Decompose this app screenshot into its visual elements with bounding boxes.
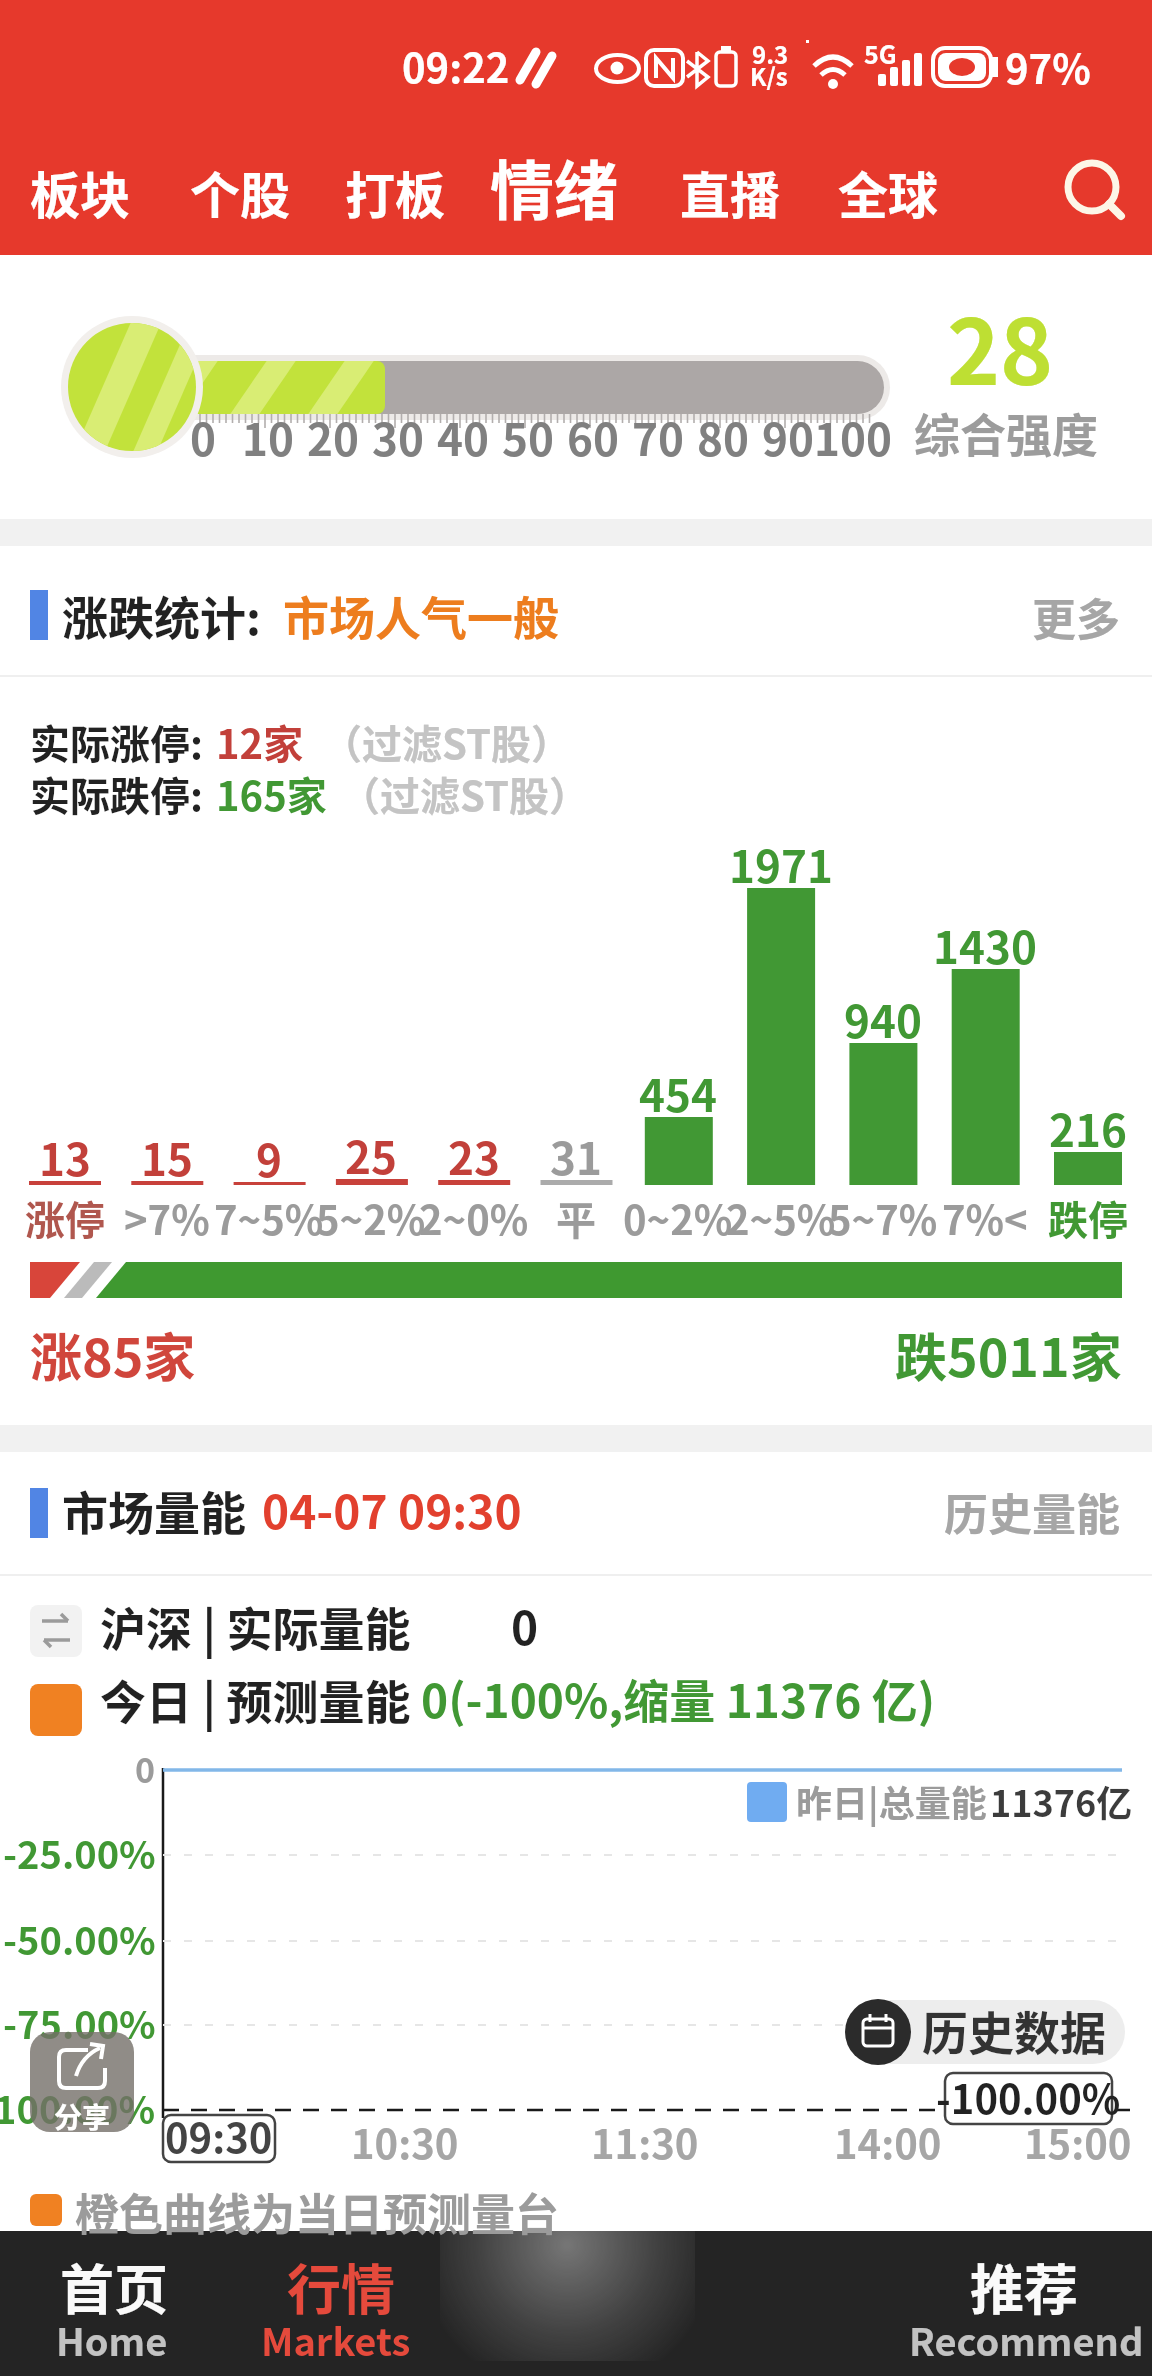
staticText: 涨停 [25, 1189, 105, 1247]
staticText: 昨日|总量能 [796, 1775, 987, 1827]
staticText: 0(-100%,缩量 11376 亿) [421, 1665, 936, 1732]
staticText: 2~5% [726, 1189, 836, 1247]
staticText: 个股 [190, 156, 290, 228]
button[interactable] [30, 2032, 134, 2132]
staticText: 沪深 | 实际量能 [100, 1593, 411, 1660]
staticText: 0 [190, 405, 216, 469]
staticText: 5~2% [316, 1189, 426, 1247]
staticText: 首页 [60, 2247, 168, 2325]
staticText: 涨85家 [30, 1317, 196, 1392]
staticText: 11:30 [591, 2113, 699, 2171]
staticText: 涨跌统计: [62, 582, 261, 649]
staticText: -25.00% [3, 1825, 156, 1880]
staticText: 09:22 [402, 37, 510, 95]
staticText: -75.00% [3, 1995, 156, 2050]
staticText: 0~2% [623, 1189, 733, 1247]
staticText: 11376亿 [990, 1775, 1133, 1827]
staticText: 直播 [680, 156, 780, 228]
staticText: 综合强度 [914, 399, 1098, 466]
staticText: Markets [261, 2312, 411, 2367]
button[interactable]: 个股 [190, 156, 290, 228]
staticText: 7%< [942, 1189, 1028, 1247]
staticText: 14:00 [834, 2113, 942, 2171]
staticText: 13 [39, 1125, 91, 1189]
button[interactable]: 直播 [680, 156, 780, 228]
staticText: 今日 | 预测量能 [100, 1666, 411, 1733]
staticText: -50.00% [3, 1911, 156, 1966]
staticText: 50 [502, 405, 554, 469]
staticText: 0 [135, 1744, 156, 1793]
staticText: 情绪 [490, 140, 618, 233]
staticText: 940 [844, 987, 922, 1051]
staticText: 跌5011家 [895, 1317, 1122, 1392]
staticText: 100 [814, 405, 892, 469]
button[interactable]: 打板 [345, 156, 445, 228]
staticText: >7% [124, 1189, 210, 1247]
button[interactable]: 情绪 [490, 140, 618, 233]
staticText: 10:30 [351, 2113, 459, 2171]
staticText: 跌停 [1048, 1189, 1128, 1247]
staticText: Home [56, 2312, 168, 2367]
staticText: 12家 [216, 713, 304, 771]
staticText: 分享 [54, 2096, 111, 2137]
staticText: 历史量能 [944, 1480, 1120, 1544]
staticText: 1430 [933, 913, 1037, 977]
staticText: 28 [947, 281, 1054, 411]
staticText: （过滤ST股） [340, 765, 590, 823]
button[interactable]: 推荐 [624, 2247, 1152, 2325]
staticText: 25 [345, 1123, 397, 1187]
staticText: 31 [550, 1124, 602, 1188]
staticText: -100.00% [936, 2068, 1121, 2126]
staticText: 70 [632, 405, 684, 469]
staticText: 0 [511, 1592, 539, 1659]
staticText: 5G [864, 35, 897, 71]
staticText: 60 [567, 405, 619, 469]
staticText: 橙色曲线为当日预测量台 [75, 2180, 559, 2244]
staticText: 09:30 [165, 2107, 273, 2165]
staticText: 10 [242, 405, 294, 469]
staticText: 板块 [30, 156, 130, 228]
staticText: 2~0% [419, 1189, 529, 1247]
staticText: 1971 [729, 832, 833, 896]
staticText: （过滤ST股） [322, 713, 572, 771]
staticText: Recommend [909, 2312, 1144, 2367]
staticText: K/s [750, 58, 788, 93]
staticText: 7~5% [214, 1189, 324, 1247]
staticText: 5~7% [828, 1189, 938, 1247]
button[interactable] [1055, 150, 1135, 230]
staticText: 市场人气一般 [283, 582, 559, 649]
staticText: 9 [256, 1126, 282, 1190]
button[interactable]: 全球 [838, 156, 938, 228]
staticText: 推荐 [970, 2247, 1078, 2325]
staticText: 行情 [287, 2247, 395, 2325]
staticText: 04-07 09:30 [262, 1476, 522, 1543]
staticText: 23 [448, 1124, 500, 1188]
button[interactable]: 首页 [0, 2247, 514, 2325]
staticText: 15:00 [1024, 2113, 1132, 2171]
staticText: 打板 [345, 156, 445, 228]
staticText: 80 [697, 405, 749, 469]
staticText: 216 [1049, 1096, 1127, 1160]
staticText: 90 [762, 405, 814, 469]
staticText: 97% [1005, 38, 1091, 96]
staticText: 30 [372, 405, 424, 469]
button[interactable] [845, 2000, 1125, 2064]
staticText: 40 [437, 405, 489, 469]
button[interactable]: 历史量能 [320, 1480, 1120, 1544]
staticText: 20 [307, 405, 359, 469]
staticText: 市场量能 [62, 1477, 246, 1544]
staticText: 15 [141, 1125, 193, 1189]
staticText: 历史数据 [922, 1997, 1106, 2064]
staticText: 更多 [1032, 585, 1120, 649]
staticText: 9.3 [752, 36, 789, 71]
button[interactable]: 行情 [0, 2247, 741, 2325]
staticText: 165家 [216, 765, 327, 823]
staticText: 实际涨停: [30, 713, 203, 771]
staticText: 全球 [838, 156, 938, 228]
button[interactable]: 更多 [320, 585, 1120, 649]
staticText: 实际跌停: [30, 765, 203, 823]
button[interactable]: 板块 [30, 156, 130, 228]
staticText: 454 [639, 1061, 717, 1125]
staticText: -100.00% [0, 2080, 156, 2135]
staticText: 平 [556, 1189, 596, 1247]
